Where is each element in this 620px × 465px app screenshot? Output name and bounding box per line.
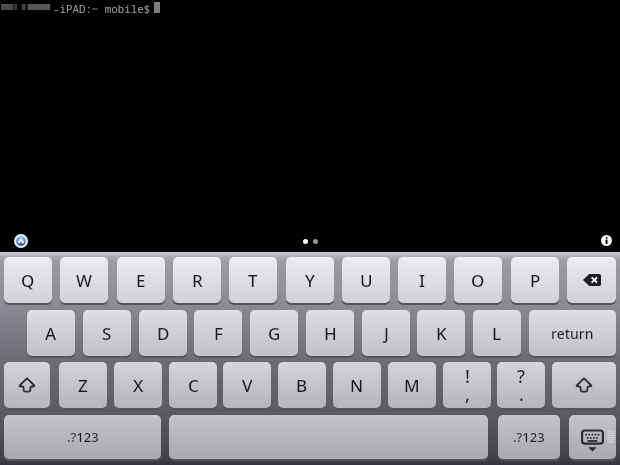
staticText: .: [519, 382, 524, 407]
staticText: D: [157, 322, 170, 345]
staticText: Y: [305, 269, 315, 292]
staticText: A: [45, 322, 57, 345]
staticText: F: [214, 322, 223, 345]
button[interactable]: E: [117, 257, 165, 305]
button[interactable]: U: [342, 257, 390, 305]
staticText: ,: [465, 382, 470, 407]
button[interactable]: R: [173, 257, 221, 305]
button[interactable]: Q: [4, 257, 52, 305]
staticText: return: [551, 324, 594, 343]
button[interactable]: D: [139, 310, 187, 358]
staticText: U: [360, 269, 373, 292]
staticText: ?: [517, 364, 526, 389]
staticText: B: [296, 374, 308, 397]
button[interactable]: I: [398, 257, 446, 305]
button[interactable]: G: [250, 310, 298, 358]
staticText: N: [350, 374, 364, 397]
button[interactable]: B: [278, 362, 326, 410]
button[interactable]: Y: [286, 257, 334, 305]
button[interactable]: K: [417, 310, 465, 358]
staticText: Q: [21, 269, 35, 292]
staticText: R: [192, 269, 203, 292]
staticText: !: [465, 364, 470, 389]
staticText: K: [436, 322, 447, 345]
button[interactable]: Shift: [4, 362, 50, 410]
button[interactable]: P: [511, 257, 559, 305]
button[interactable]: Hide keyboard: [569, 415, 616, 461]
staticText: G: [268, 322, 281, 345]
button[interactable]: O: [454, 257, 502, 305]
staticText: T: [248, 269, 258, 292]
staticText: M: [404, 374, 420, 397]
staticText: Z: [78, 374, 88, 397]
button[interactable]: return: [529, 310, 616, 358]
staticText: H: [324, 322, 337, 345]
button[interactable]: V: [223, 362, 271, 410]
staticText: J: [384, 322, 389, 345]
button[interactable]: N: [333, 362, 381, 410]
staticText: C: [188, 374, 199, 397]
button[interactable]: J: [362, 310, 410, 358]
staticText: S: [102, 322, 112, 345]
button[interactable]: M: [388, 362, 436, 410]
staticText: .?123: [67, 428, 99, 446]
button[interactable]: !: [443, 362, 491, 410]
button[interactable]: Backspace: [567, 257, 616, 305]
button[interactable]: .?123: [4, 415, 161, 461]
staticText: L: [492, 322, 502, 345]
button[interactable]: ?: [497, 362, 545, 410]
staticText: X: [133, 374, 144, 397]
staticText: W: [76, 269, 92, 292]
button[interactable]: Info: [601, 235, 612, 246]
button[interactable]: S: [83, 310, 131, 358]
button[interactable]: W: [60, 257, 108, 305]
button[interactable]: Shift: [552, 362, 616, 410]
button[interactable]: A: [27, 310, 75, 358]
button[interactable]: C: [169, 362, 217, 410]
button[interactable]: F: [194, 310, 242, 358]
button[interactable]: H: [306, 310, 354, 358]
staticText: P: [530, 269, 541, 292]
staticText: -iPAD:~ mobile$: [53, 1, 151, 16]
staticText: V: [242, 374, 253, 397]
staticText: E: [136, 269, 146, 292]
staticText: I: [419, 269, 426, 292]
staticText: .?123: [513, 428, 545, 446]
button[interactable]: X: [114, 362, 162, 410]
button[interactable]: Scroll up: [14, 234, 28, 248]
staticText: O: [471, 269, 485, 292]
button[interactable]: .?123: [498, 415, 560, 461]
button[interactable]: L: [473, 310, 521, 358]
button[interactable]: Z: [59, 362, 107, 410]
button[interactable]: Space: [169, 415, 488, 461]
button[interactable]: T: [229, 257, 277, 305]
